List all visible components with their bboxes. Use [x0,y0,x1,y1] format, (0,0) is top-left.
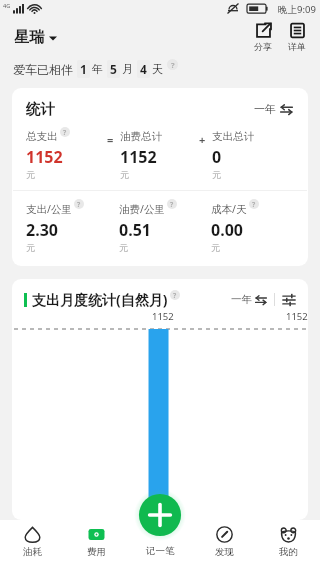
button[interactable]: Help [249,199,259,209]
button[interactable]: Share [248,20,278,54]
staticText: 详单 [288,41,306,52]
staticText: 1152 [152,310,174,323]
staticText: 一年 [231,293,252,306]
button[interactable]: Details [282,20,312,54]
button[interactable]: Help [167,199,177,209]
staticText: 1152 [26,146,63,168]
staticText: 天 [152,62,163,76]
staticText: 成本/天 [211,202,247,216]
button[interactable]: 一年 [229,291,269,308]
staticText: 油费/公里 [119,202,165,216]
staticText: 星瑞 [14,28,44,47]
staticText: 元 [211,242,220,253]
staticText: 元 [212,169,221,180]
staticText: 年 [92,62,103,76]
staticText: 元 [26,242,35,253]
staticText: 统计 [26,100,55,118]
staticText: 支出总计 [212,130,254,143]
staticText: 元 [120,169,129,180]
staticText: 油费总计 [120,130,162,143]
staticText: ? [77,200,81,209]
button[interactable]: 油耗 [0,520,64,558]
button[interactable]: Help [167,59,178,70]
staticText: 支出/公里 [26,202,72,216]
button[interactable]: Help [170,290,180,300]
staticText: 分享 [254,41,272,52]
staticText: 2.30 [26,219,58,241]
button[interactable]: Help [60,127,70,137]
staticText: 爱车已相伴 [13,62,73,77]
button[interactable]: 发现 [192,520,256,558]
staticText: 记一笔 [146,545,175,557]
staticText: ? [171,60,175,70]
staticText: ? [252,200,256,209]
staticText: 晚上9:09 [278,3,316,16]
staticText: 1152 [286,310,308,323]
staticText: ? [170,200,174,209]
staticText: 一年 [254,102,276,116]
staticText: 0.00 [211,219,243,241]
staticText: 发现 [215,546,234,558]
staticText: 油耗 [23,546,42,558]
staticText: 1152 [120,146,157,168]
staticText: 5 [110,61,117,77]
button[interactable]: 费用 [64,520,128,558]
button[interactable]: Chart settings [281,292,297,308]
staticText: 月 [122,62,133,76]
staticText: 费用 [87,546,106,558]
staticText: 总支出 [26,130,58,143]
staticText: 4 [140,61,147,77]
button[interactable]: Help [74,199,84,209]
staticText: 元 [119,242,128,253]
staticText: 支出月度统计(自然月) [32,290,168,309]
staticText: = [107,132,114,147]
staticText: ? [173,291,177,300]
button[interactable]: 星瑞 [12,25,59,50]
staticText: 0 [212,146,222,168]
staticText: ? [63,128,67,137]
staticText: 0.51 [119,219,151,241]
staticText: 我的 [279,546,298,558]
button[interactable]: 记一笔 [128,520,192,568]
staticText: 4G [3,2,11,9]
staticText: 1 [80,61,87,77]
button[interactable]: 一年 [251,99,296,119]
staticText: + [199,132,206,147]
button[interactable]: 我的 [256,520,320,558]
staticText: 元 [26,169,35,180]
button[interactable]: Add record [134,489,186,541]
